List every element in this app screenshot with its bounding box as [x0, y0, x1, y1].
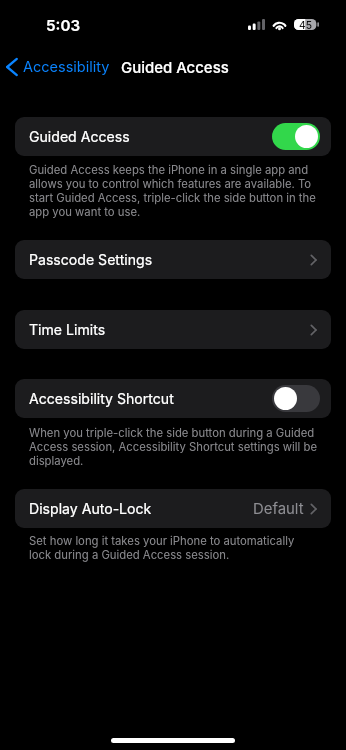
staticText: Accessibility Shortcut — [29, 390, 174, 407]
button[interactable]: Display Auto-Lock — [15, 489, 331, 528]
staticText: When you triple-click the side button du… — [29, 426, 318, 468]
button[interactable]: Turn off — [272, 123, 320, 150]
button[interactable]: Guided Access — [15, 117, 331, 156]
staticText: Accessibility — [23, 58, 110, 76]
button[interactable]: Accessibility Shortcut — [15, 379, 331, 418]
button[interactable]: Passcode Settings — [15, 240, 331, 279]
staticText: Set how long it takes your iPhone to aut… — [29, 534, 318, 562]
button[interactable]: Turn on — [272, 385, 320, 412]
staticText: Passcode Settings — [29, 251, 153, 268]
staticText: Time Limits — [29, 321, 106, 338]
staticText: Guided Access — [29, 128, 130, 145]
staticText: Guided Access keeps the iPhone in a sing… — [29, 163, 318, 219]
staticText: 5:03 — [46, 16, 81, 34]
button[interactable]: Time Limits — [15, 310, 331, 349]
staticText: 45 — [299, 19, 312, 30]
button[interactable]: Back to Accessibility — [1, 54, 115, 80]
staticText: Display Auto-Lock — [29, 500, 152, 517]
staticText: Default — [253, 500, 304, 518]
staticText: Guided Access — [121, 59, 229, 77]
